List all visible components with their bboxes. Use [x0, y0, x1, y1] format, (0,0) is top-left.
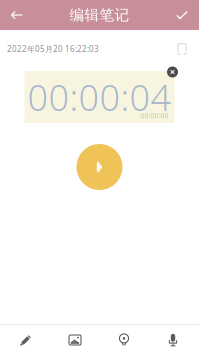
button[interactable]: Photo [50, 325, 99, 355]
button[interactable]: Save [165, 0, 199, 30]
button[interactable]: Text [1, 325, 50, 355]
staticText: 00:00:04 [27, 73, 171, 121]
button[interactable]: Back [0, 0, 34, 30]
button[interactable]: Play [76, 144, 122, 190]
button[interactable]: Delete recording [164, 64, 180, 80]
button[interactable]: Bookmark [171, 38, 193, 60]
staticText: 00:00:00 [140, 111, 168, 120]
button[interactable]: Location [99, 325, 148, 355]
staticText: 编辑笔记 [69, 6, 129, 24]
button[interactable]: Record audio [148, 325, 197, 355]
staticText: 2022年05月20 16:22:03 [7, 44, 99, 54]
